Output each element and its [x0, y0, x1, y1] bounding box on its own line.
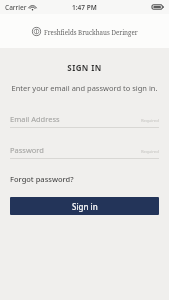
button[interactable]: Freshfields logo	[28, 25, 142, 38]
staticText: Forgot password?	[10, 174, 74, 184]
button[interactable]: Sign in	[10, 197, 159, 215]
staticText: Required	[141, 118, 159, 124]
button[interactable]: Email Address	[0, 114, 169, 128]
staticText: Sign in	[72, 201, 98, 212]
staticText: Freshfields Bruckhaus Deringer	[44, 28, 138, 36]
button[interactable]: Forgot password?	[0, 172, 84, 186]
staticText: Password	[10, 145, 44, 155]
other: Battery full	[152, 4, 164, 10]
staticText: Enter your email and password to sign in…	[0, 83, 169, 93]
staticText: SIGN IN	[0, 62, 169, 73]
staticText: 1:47 PM	[72, 3, 97, 12]
staticText: Required	[141, 149, 159, 155]
staticText: Email Address	[10, 114, 60, 124]
button[interactable]: Password	[0, 145, 169, 159]
other: Freshfields logo	[32, 27, 41, 36]
staticText: Carrier	[5, 3, 27, 12]
